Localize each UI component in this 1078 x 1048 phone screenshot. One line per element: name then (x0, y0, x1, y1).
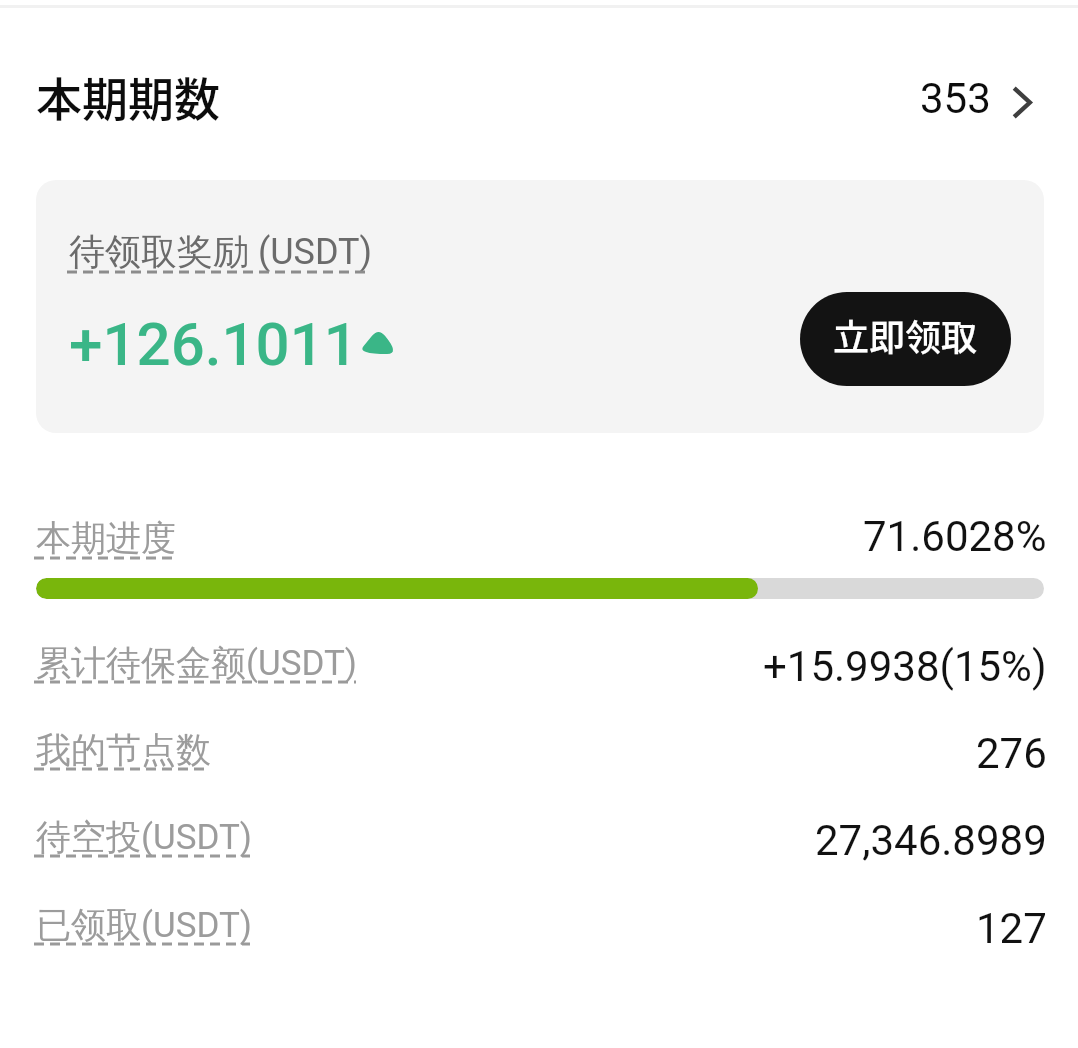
staticText: +15.9938(15%) (763, 642, 1047, 691)
button[interactable]: 已领取(USDT) (36, 897, 253, 941)
staticText: 本期期数 (36, 63, 220, 130)
staticText: 本期进度 (36, 516, 176, 560)
button[interactable]: 待空投(USDT) (36, 809, 253, 853)
staticText: 71.6028% (863, 512, 1047, 561)
staticText: 累计待保金额(USDT) (36, 641, 358, 685)
staticText: 待领取奖励 (USDT) (69, 229, 373, 274)
staticText: 127 (976, 904, 1047, 953)
button[interactable]: 立即领取 (800, 292, 1011, 386)
button[interactable]: 本期期数 (0, 30, 1078, 148)
other: View period details (1010, 84, 1034, 121)
staticText: 276 (976, 729, 1047, 778)
staticText: 353 (920, 74, 991, 123)
button[interactable]: 待领取奖励 (USDT) (67, 223, 371, 268)
staticText: 27,346.8989 (815, 816, 1047, 865)
button[interactable]: 我的节点数 (36, 722, 212, 766)
staticText: 我的节点数 (36, 728, 211, 772)
staticText: 已领取(USDT) (36, 903, 253, 947)
button[interactable]: 累计待保金额(USDT) (36, 635, 358, 679)
button[interactable]: 本期进度 (36, 510, 178, 554)
staticText: 立即领取 (833, 309, 978, 361)
staticText: 待空投(USDT) (36, 815, 253, 859)
staticText: +126.1011 (69, 309, 358, 379)
